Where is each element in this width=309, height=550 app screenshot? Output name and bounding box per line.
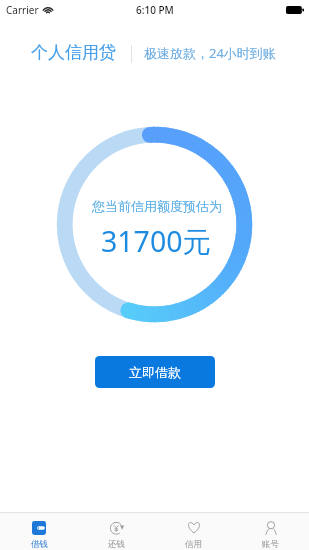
other: 还钱	[110, 521, 124, 535]
button[interactable]: 还钱	[78, 513, 155, 550]
staticText: Carrier	[6, 3, 39, 17]
other: 信用	[187, 521, 201, 535]
staticText: 个人信用贷	[31, 42, 116, 63]
other: 借钱	[32, 521, 46, 535]
button[interactable]: 立即借款	[95, 356, 215, 388]
staticText: 极速放款，24小时到账	[144, 44, 276, 62]
button[interactable]: 账号	[232, 513, 309, 550]
staticText: 信用	[185, 539, 202, 550]
other: 账号	[264, 521, 278, 535]
staticText: 您当前信用额度预估为	[92, 198, 222, 214]
button[interactable]: 信用	[155, 513, 232, 550]
staticText: 立即借款	[129, 364, 181, 380]
staticText: 6:10 PM	[136, 3, 174, 17]
staticText: 借钱	[31, 539, 48, 550]
staticText: 账号	[262, 539, 279, 550]
staticText: 还钱	[108, 539, 125, 550]
button[interactable]: 借钱	[0, 513, 78, 550]
staticText: 31700元	[101, 222, 212, 261]
